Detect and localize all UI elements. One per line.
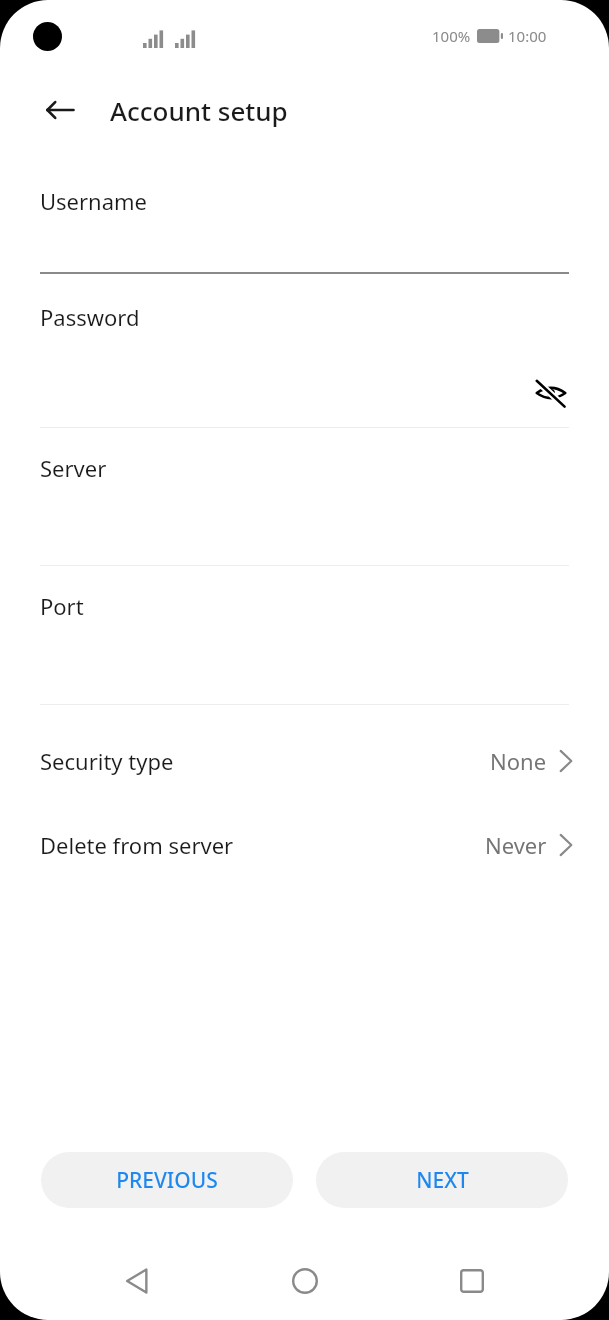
staticText: Password xyxy=(40,302,140,332)
button[interactable]: Port xyxy=(0,566,609,705)
staticText: Account setup xyxy=(110,93,288,128)
button[interactable]: Recent apps xyxy=(441,1250,503,1312)
staticText: None xyxy=(490,746,547,776)
button[interactable]: PREVIOUS xyxy=(41,1152,293,1208)
button[interactable]: NEXT xyxy=(316,1152,568,1208)
button[interactable]: Username xyxy=(0,148,609,274)
button[interactable]: Delete from server xyxy=(0,803,609,887)
button[interactable]: Home xyxy=(274,1250,336,1312)
button[interactable]: Server xyxy=(0,428,609,566)
staticText: Security type xyxy=(40,746,174,776)
staticText: Server xyxy=(40,453,107,483)
staticText: PREVIOUS xyxy=(116,1166,218,1195)
button[interactable]: Security type xyxy=(0,719,609,803)
staticText: Port xyxy=(40,591,84,621)
button[interactable]: Back xyxy=(32,82,88,138)
staticText: Delete from server xyxy=(40,830,234,860)
staticText: 100% xyxy=(432,26,471,46)
staticText: NEXT xyxy=(416,1166,469,1195)
button[interactable]: Password xyxy=(0,274,609,428)
staticText: 10:00 xyxy=(508,26,547,46)
staticText: Username xyxy=(40,186,148,216)
button[interactable]: Back xyxy=(106,1250,168,1312)
staticText: Never xyxy=(485,830,547,860)
button[interactable]: Show password xyxy=(527,369,575,417)
